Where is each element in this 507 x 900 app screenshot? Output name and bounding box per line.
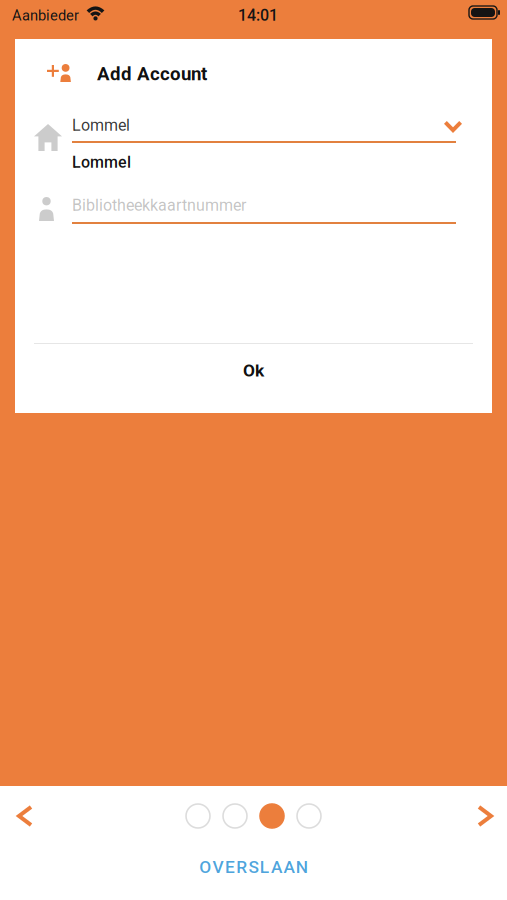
button[interactable]: Previous page <box>5 793 45 839</box>
staticText: Lommel <box>72 116 130 135</box>
button[interactable]: Ok <box>15 336 492 405</box>
staticText: 14:01 <box>238 6 278 25</box>
button[interactable]: Lommel <box>72 111 456 147</box>
staticText: Add Account <box>97 63 207 85</box>
button[interactable]: Next page <box>465 793 505 839</box>
staticText: Lommel <box>72 153 131 172</box>
button[interactable]: OVERSLAAN <box>0 845 507 889</box>
staticText: OVERSLAAN <box>199 857 308 877</box>
staticText: Bibliotheekkaartnummer <box>72 196 246 215</box>
staticText: Aanbieder <box>12 7 79 24</box>
staticText: Ok <box>243 360 264 381</box>
